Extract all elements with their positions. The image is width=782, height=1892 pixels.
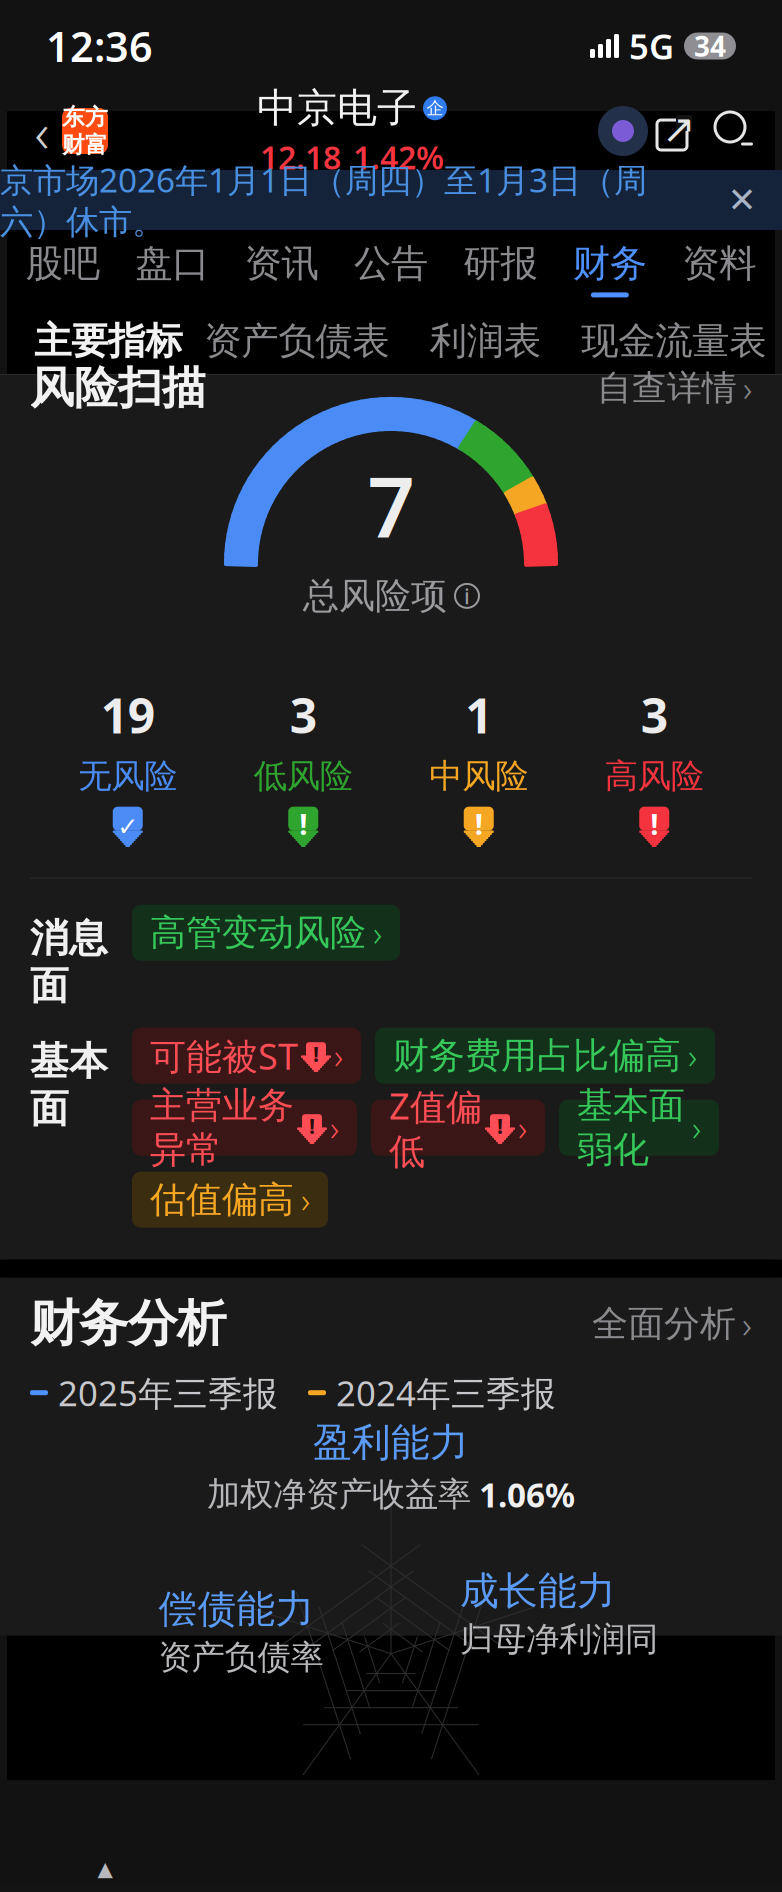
button[interactable]: 关闭公告: [720, 178, 764, 222]
staticText: ›: [373, 910, 382, 956]
button[interactable]: 估值偏高: [132, 1172, 328, 1228]
staticText: 2025年三季报: [58, 1370, 278, 1416]
button[interactable]: 3: [566, 683, 742, 848]
button[interactable]: 主要指标: [14, 308, 202, 374]
button[interactable]: 1: [391, 683, 566, 848]
staticText: !: [313, 1039, 319, 1068]
staticText: 中风险: [429, 756, 528, 797]
button[interactable]: 3: [215, 683, 391, 848]
staticText: 全面分析: [592, 1302, 736, 1346]
staticText: 总风险项: [303, 574, 447, 618]
staticText: 研报: [463, 241, 537, 286]
staticText: 高风险: [605, 756, 704, 797]
staticText: 公告: [354, 241, 428, 286]
button[interactable]: AI 助手: [596, 102, 650, 160]
staticText: 3: [290, 683, 317, 747]
staticText: ▲: [97, 1857, 112, 1880]
button[interactable]: 研报: [446, 230, 555, 308]
button[interactable]: 19: [40, 683, 215, 848]
staticText: 资讯: [245, 241, 319, 286]
staticText: ›: [334, 1033, 343, 1079]
staticText: ‹: [34, 94, 49, 168]
staticText: ›: [301, 1177, 310, 1223]
staticText: 12.18: [260, 136, 341, 178]
staticText: ›: [330, 1105, 339, 1151]
button[interactable]: Z值偏低: [371, 1100, 545, 1156]
staticText: 财务分析: [30, 1293, 226, 1354]
staticText: 12:36: [46, 19, 153, 73]
button[interactable]: 分享: [650, 105, 702, 157]
staticText: 归母净利润同: [460, 1619, 658, 1660]
staticText: ›: [743, 365, 752, 411]
staticText: 自查详情: [597, 367, 737, 409]
staticText: 财务: [573, 241, 647, 286]
button[interactable]: 基本面弱化: [559, 1100, 719, 1156]
button[interactable]: 资产负债表: [202, 308, 391, 374]
staticText: 可能被ST: [150, 1032, 298, 1080]
staticText: 资料: [682, 241, 756, 286]
button[interactable]: 主营业务异常: [132, 1100, 357, 1156]
staticText: 2024年三季报: [336, 1370, 556, 1416]
staticText: 利润表: [430, 318, 541, 364]
staticText: ✓: [117, 812, 138, 841]
staticText: ›: [518, 1105, 527, 1151]
staticText: 5G: [629, 23, 674, 69]
staticText: ›: [692, 1105, 701, 1151]
staticText: 股吧: [26, 241, 100, 286]
staticText: 19: [101, 683, 155, 747]
staticText: 京市场2026年1月1日（周四）至1月3日（周六）休市。: [0, 157, 647, 243]
staticText: 高管变动风险: [150, 911, 366, 955]
staticText: !: [497, 1111, 503, 1140]
staticText: 1.06%: [479, 1472, 575, 1517]
staticText: 盈利能力: [313, 1419, 469, 1466]
staticText: 东方: [62, 103, 108, 131]
staticText: 估值偏高: [150, 1178, 294, 1222]
staticText: i: [464, 582, 470, 610]
staticText: ›: [688, 1033, 697, 1079]
staticText: 1.42%: [353, 136, 444, 178]
staticText: 7: [367, 450, 414, 560]
button[interactable]: 财务分析: [0, 1278, 782, 1370]
staticText: 现金流量表: [581, 318, 766, 364]
staticText: 基本面: [30, 1038, 108, 1133]
staticText: 中京电子: [257, 84, 417, 133]
button[interactable]: 财务: [555, 230, 664, 308]
staticText: 消息面: [30, 915, 108, 1010]
staticText: 偿债能力: [158, 1585, 314, 1633]
staticText: Z值偏低: [389, 1082, 482, 1174]
staticText: 加权净资产收益率: [207, 1474, 471, 1515]
staticText: 主要指标: [34, 318, 182, 364]
button[interactable]: 东方财富首页: [62, 108, 108, 154]
staticText: 无风险: [78, 756, 177, 797]
staticText: ›: [742, 1299, 752, 1348]
button[interactable]: 盘口: [117, 230, 227, 308]
staticText: 资产负债表: [204, 318, 389, 364]
button[interactable]: 搜索: [708, 105, 760, 157]
staticText: 34: [694, 27, 726, 65]
staticText: 资产负债率: [158, 1637, 323, 1678]
staticText: !: [475, 804, 483, 843]
button[interactable]: 资料: [665, 230, 774, 308]
staticText: ↗: [662, 106, 696, 152]
button[interactable]: 股吧: [8, 230, 117, 308]
button[interactable]: 现金流量表: [579, 308, 768, 374]
staticText: !: [650, 804, 658, 843]
staticText: !: [299, 804, 307, 843]
button[interactable]: 利润表: [391, 308, 579, 374]
staticText: 财富: [62, 131, 108, 159]
staticText: 盘口: [135, 241, 209, 286]
staticText: !: [309, 1111, 315, 1140]
button[interactable]: 返回: [22, 101, 62, 161]
button[interactable]: 高管变动风险: [132, 905, 400, 961]
button[interactable]: 财务费用占比偏高: [375, 1028, 715, 1084]
staticText: 风险扫描: [30, 361, 206, 415]
button[interactable]: 可能被ST: [132, 1028, 361, 1084]
button[interactable]: 资讯: [227, 230, 336, 308]
button[interactable]: 公告: [336, 230, 446, 308]
staticText: 企: [426, 98, 443, 119]
staticText: 财务费用占比偏高: [393, 1034, 681, 1078]
button[interactable]: 上证指数: [20, 1857, 190, 1892]
staticText: 低风险: [254, 756, 353, 797]
staticText: 基本面弱化: [577, 1083, 685, 1172]
